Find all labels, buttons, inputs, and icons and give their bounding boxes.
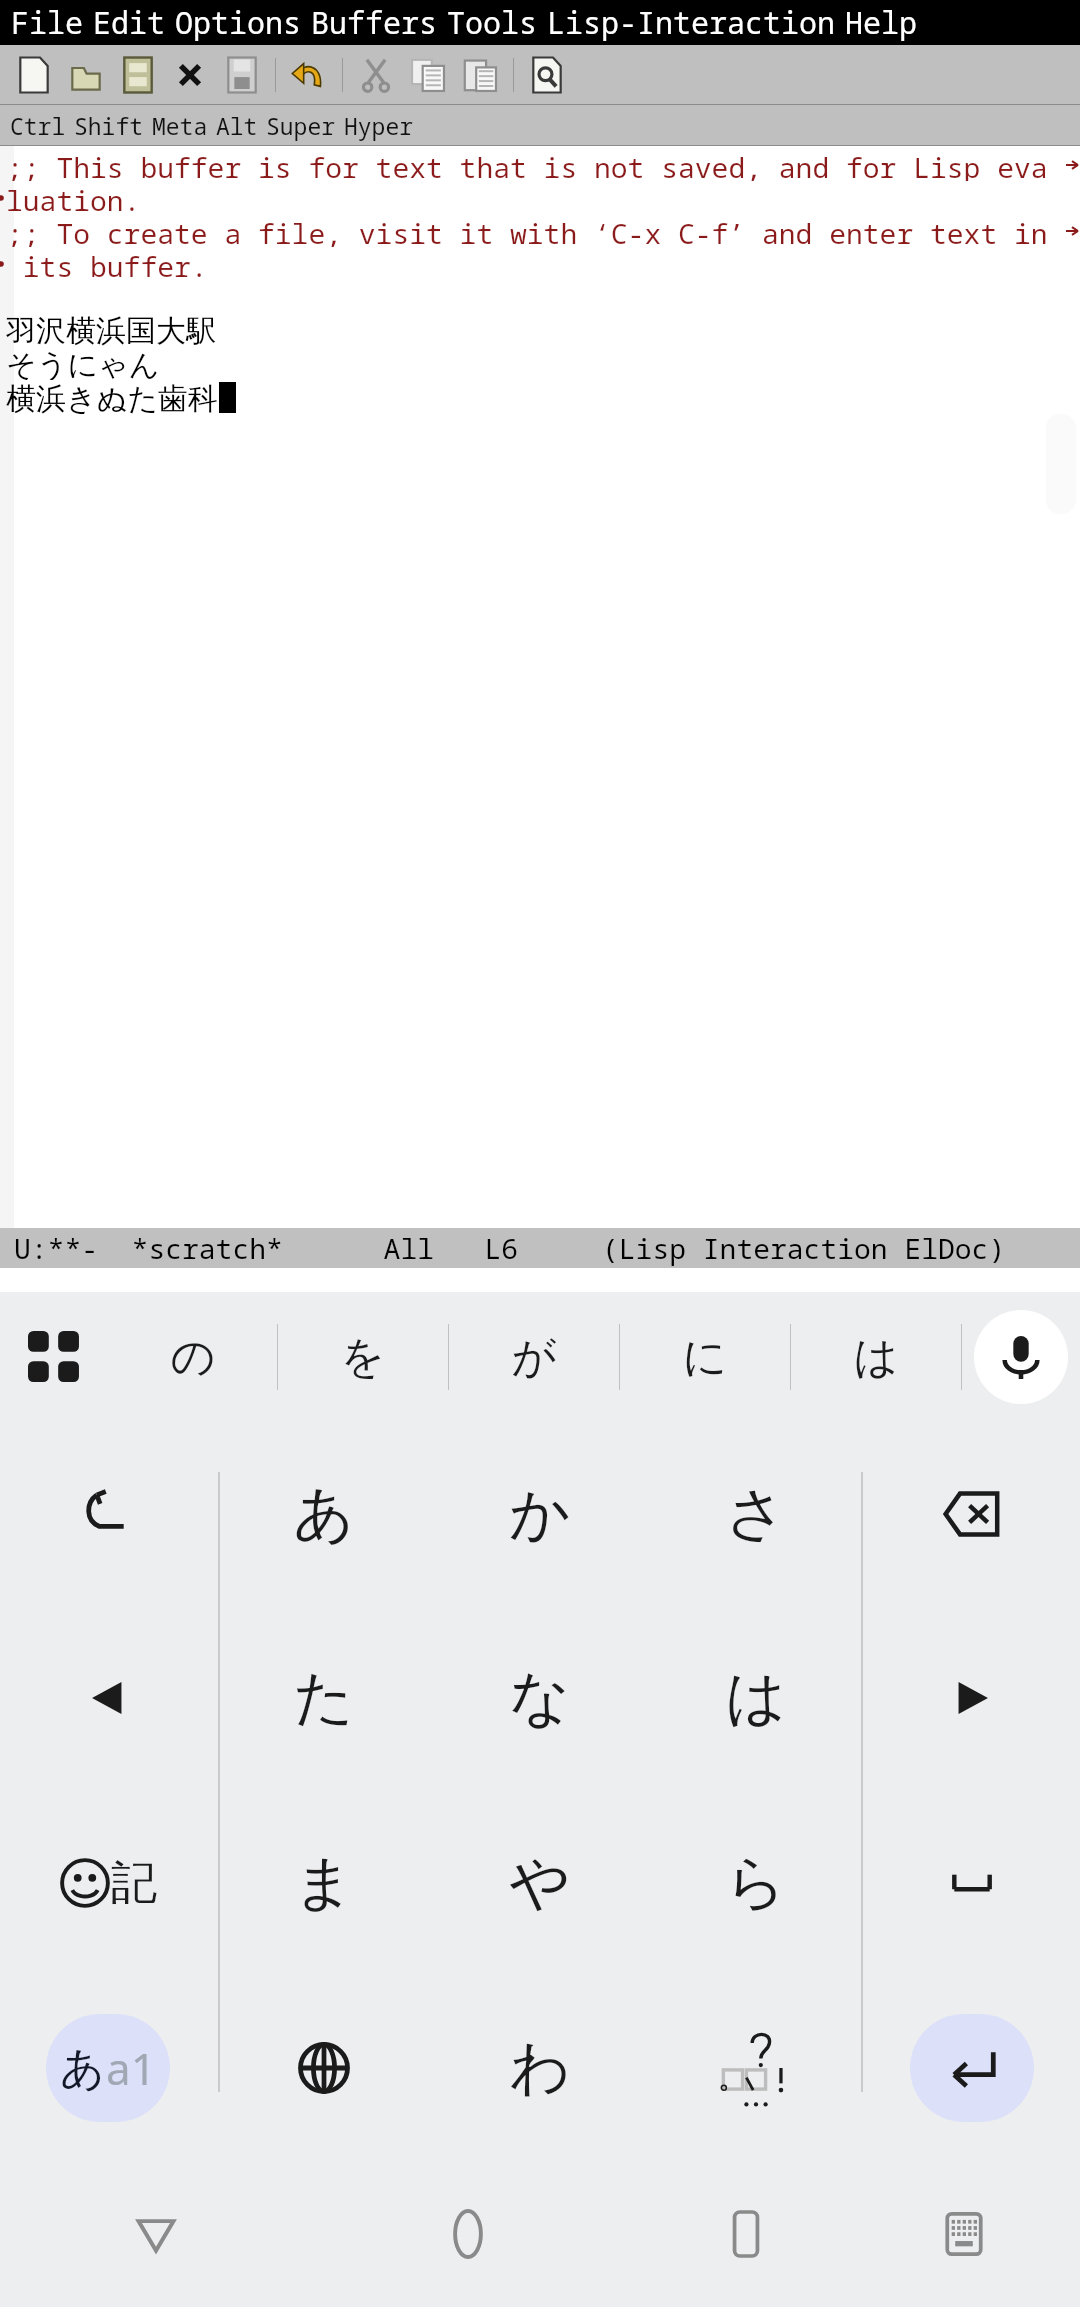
staticText: の — [170, 1330, 216, 1385]
staticText: に — [682, 1330, 728, 1385]
button[interactable]: を — [278, 1292, 448, 1422]
button[interactable]: close — [164, 49, 216, 101]
staticText: を — [340, 1330, 386, 1385]
staticText: Meta — [152, 110, 208, 141]
staticText: luation. — [6, 181, 141, 214]
button[interactable]: Space — [864, 1790, 1080, 1975]
button[interactable]: Enter — [864, 1975, 1080, 2160]
button[interactable]: Home — [312, 2160, 624, 2307]
button[interactable]: か — [432, 1422, 648, 1606]
button[interactable]: Voice input — [974, 1310, 1068, 1404]
button[interactable]: Shift — [70, 110, 148, 141]
button[interactable]: Undo — [0, 1422, 216, 1606]
button[interactable]: Switch keyboard — [867, 2160, 1060, 2307]
button[interactable]: Cursor left — [0, 1606, 216, 1790]
staticText: 羽沢横浜国大駅 — [6, 312, 216, 346]
button[interactable]: search — [521, 49, 573, 101]
button[interactable]: が — [449, 1292, 619, 1422]
button[interactable]: Tools — [442, 2, 542, 43]
button[interactable]: は — [791, 1292, 961, 1422]
staticText: its buffer. — [6, 247, 208, 280]
button[interactable]: に — [620, 1292, 790, 1422]
button[interactable]: Meta — [148, 110, 212, 141]
staticText: Hyper — [344, 110, 414, 141]
staticText: は — [853, 1330, 899, 1385]
button[interactable]: Super — [262, 110, 340, 141]
button[interactable]: paste — [454, 49, 506, 101]
button[interactable]: Switch input mode — [0, 1975, 216, 2160]
button[interactable]: Emoji and symbols — [0, 1790, 216, 1975]
staticText: ら — [725, 1845, 787, 1921]
button[interactable]: Help — [840, 2, 922, 43]
staticText: Lisp-Interaction — [547, 2, 835, 43]
staticText: Shift — [74, 110, 144, 141]
staticText: ;; This buffer is for text that is not s… — [6, 148, 1048, 181]
staticText: た — [293, 1660, 355, 1736]
staticText: 横浜きぬた歯科 — [6, 380, 219, 414]
button[interactable]: Cursor right — [864, 1606, 1080, 1790]
staticText: わ — [509, 2030, 571, 2106]
staticText: Buffers — [311, 2, 437, 43]
staticText: や — [509, 1845, 571, 1921]
button[interactable]: File — [6, 2, 88, 43]
staticText: 記 — [111, 1854, 157, 1912]
staticText: Ctrl — [10, 110, 66, 141]
button[interactable]: Alt — [212, 110, 262, 141]
staticText: あ — [293, 1476, 355, 1552]
staticText: Super — [266, 110, 336, 141]
button[interactable]: や — [432, 1790, 648, 1975]
button[interactable]: Backspace — [864, 1422, 1080, 1606]
button[interactable]: new — [8, 49, 60, 101]
button[interactable]: Recent apps — [624, 2160, 867, 2307]
button[interactable]: copy — [402, 49, 454, 101]
button[interactable]: Hyper — [340, 110, 418, 141]
button[interactable]: cut — [350, 49, 402, 101]
staticText: Tools — [447, 2, 537, 43]
button[interactable]: diskette — [216, 49, 268, 101]
button[interactable]: Ctrl — [6, 110, 70, 141]
staticText: な — [509, 1660, 571, 1736]
staticText: が — [511, 1330, 557, 1385]
button[interactable]: た — [216, 1606, 432, 1790]
staticText: か — [509, 1476, 571, 1552]
staticText: は — [725, 1660, 787, 1736]
button[interactable]: わ — [432, 1975, 648, 2160]
staticText: ま — [293, 1845, 355, 1921]
staticText: ;; To create a file, visit it with ‘C-x … — [6, 214, 1048, 247]
button[interactable]: ま — [216, 1790, 432, 1975]
staticText: あ — [60, 2041, 106, 2096]
staticText: U:**- *scratch* All L6 (Lisp Interaction… — [14, 1229, 1006, 1267]
button[interactable]: Lisp-Interaction — [542, 2, 840, 43]
button[interactable]: の — [108, 1292, 277, 1422]
button[interactable]: Buffers — [306, 2, 442, 43]
button[interactable]: は — [648, 1606, 864, 1790]
staticText: さ — [725, 1476, 787, 1552]
button[interactable]: な — [432, 1606, 648, 1790]
staticText: File — [11, 2, 83, 43]
button[interactable]: undo — [283, 49, 335, 101]
staticText: a1 — [106, 2038, 156, 2098]
staticText: Edit — [93, 2, 165, 43]
staticText: Options — [175, 2, 301, 43]
button[interactable]: Globe — [216, 1975, 432, 2160]
staticText: Help — [845, 2, 917, 43]
button[interactable]: Punctuation — [648, 1975, 864, 2160]
button[interactable]: open — [60, 49, 112, 101]
staticText: Alt — [216, 110, 258, 141]
button[interactable]: あ — [216, 1422, 432, 1606]
button[interactable]: ら — [648, 1790, 864, 1975]
button[interactable]: Edit — [88, 2, 170, 43]
button[interactable]: Open apps — [0, 1292, 108, 1422]
staticText: そうにゃん — [6, 346, 160, 380]
button[interactable]: Back — [0, 2160, 312, 2307]
button[interactable]: さ — [648, 1422, 864, 1606]
button[interactable]: Options — [170, 2, 306, 43]
button[interactable]: save — [112, 49, 164, 101]
